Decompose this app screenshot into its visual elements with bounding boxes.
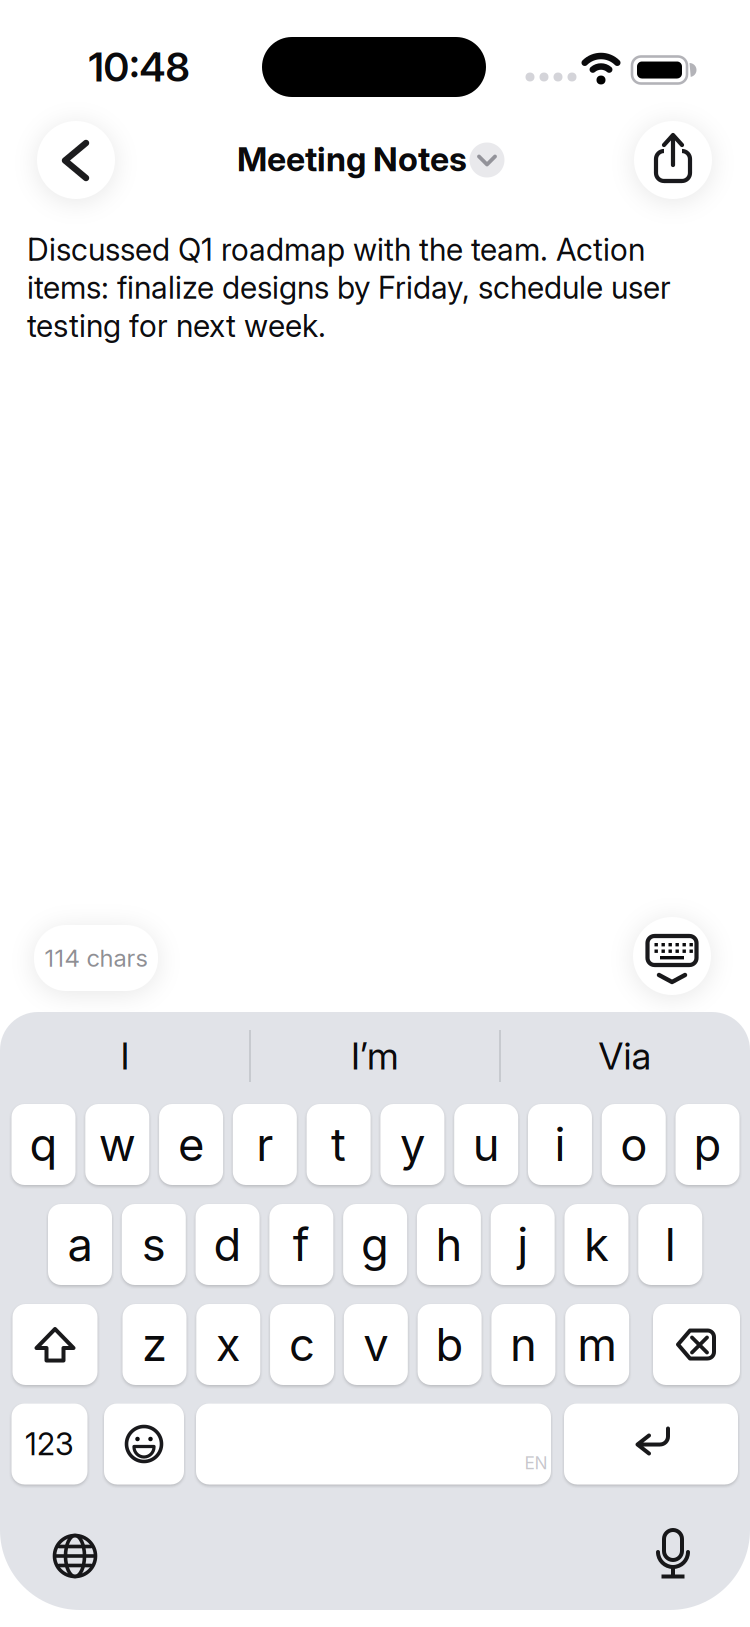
staticText: x xyxy=(216,1317,241,1372)
staticText: p xyxy=(693,1117,721,1172)
button[interactable]: Dictation xyxy=(651,1525,695,1585)
button[interactable]: h xyxy=(417,1202,481,1286)
button[interactable]: l xyxy=(638,1202,702,1286)
button[interactable]: f xyxy=(269,1202,333,1286)
staticText: u xyxy=(473,1117,500,1172)
staticText: w xyxy=(99,1117,136,1172)
staticText: q xyxy=(29,1117,57,1172)
button[interactable]: Share xyxy=(634,121,712,199)
button[interactable]: Return xyxy=(564,1403,738,1484)
staticText: a xyxy=(67,1217,92,1272)
button[interactable]: s xyxy=(122,1202,186,1286)
staticText: 123 xyxy=(25,1425,74,1462)
button[interactable]: t xyxy=(307,1102,371,1186)
button[interactable]: k xyxy=(564,1202,628,1286)
button[interactable]: Via xyxy=(505,1016,745,1096)
button[interactable]: I xyxy=(5,1016,245,1096)
staticText: y xyxy=(400,1117,425,1172)
button[interactable]: v xyxy=(344,1302,408,1386)
button[interactable]: g xyxy=(343,1202,407,1286)
staticText: n xyxy=(510,1317,537,1372)
button[interactable]: p xyxy=(675,1102,739,1186)
button[interactable]: m xyxy=(565,1302,629,1386)
staticText: g xyxy=(361,1217,389,1272)
button[interactable]: y xyxy=(380,1102,444,1186)
staticText: v xyxy=(363,1317,388,1372)
button[interactable]: w xyxy=(85,1102,149,1186)
button[interactable]: r xyxy=(233,1102,297,1186)
staticText: 114 chars xyxy=(44,943,147,972)
staticText: h xyxy=(435,1217,462,1272)
button[interactable]: x xyxy=(196,1302,260,1386)
button[interactable]: Back xyxy=(37,121,115,199)
button[interactable]: d xyxy=(196,1202,260,1286)
button[interactable]: q xyxy=(11,1102,75,1186)
staticText: Via xyxy=(598,1033,651,1079)
button[interactable]: Next keyboard xyxy=(45,1526,105,1586)
button[interactable]: 123 xyxy=(11,1403,87,1484)
staticText: t xyxy=(331,1117,346,1172)
staticText: s xyxy=(142,1217,166,1272)
staticText: I xyxy=(120,1033,129,1079)
button[interactable]: I’m xyxy=(255,1016,495,1096)
staticText: e xyxy=(178,1117,204,1172)
button[interactable]: a xyxy=(48,1202,112,1286)
staticText: k xyxy=(584,1217,609,1272)
staticText: f xyxy=(293,1217,310,1272)
button[interactable]: z xyxy=(122,1302,186,1386)
button[interactable]: e xyxy=(159,1102,223,1186)
staticText: b xyxy=(436,1317,464,1372)
staticText: l xyxy=(665,1217,676,1272)
button[interactable]: c xyxy=(270,1302,334,1386)
button[interactable]: j xyxy=(491,1202,555,1286)
button[interactable]: Title menu xyxy=(469,142,504,177)
staticText: Discussed Q1 roadmap with the team. Acti… xyxy=(27,231,645,268)
button[interactable]: Dismiss keyboard xyxy=(633,917,711,995)
button[interactable]: i xyxy=(528,1102,592,1186)
staticText: Meeting Notes xyxy=(237,139,467,179)
staticText: i xyxy=(554,1117,565,1172)
staticText: 10:48 xyxy=(88,43,189,91)
staticText: items: finalize designs by Friday, sched… xyxy=(27,269,671,306)
button[interactable]: u xyxy=(454,1102,518,1186)
staticText: o xyxy=(620,1117,647,1172)
staticText: EN xyxy=(524,1452,547,1473)
button[interactable]: space xyxy=(196,1403,551,1484)
button[interactable]: b xyxy=(418,1302,482,1386)
staticText: r xyxy=(256,1117,273,1172)
button[interactable]: Emoji xyxy=(104,1403,184,1484)
staticText: j xyxy=(517,1217,528,1272)
button[interactable]: Delete xyxy=(653,1304,740,1385)
staticText: m xyxy=(577,1317,617,1372)
button[interactable]: n xyxy=(491,1302,555,1386)
button[interactable]: Shift xyxy=(12,1304,97,1385)
staticText: z xyxy=(142,1317,167,1372)
staticText: I’m xyxy=(351,1033,399,1079)
staticText: c xyxy=(289,1317,315,1372)
staticText: testing for next week. xyxy=(27,307,326,344)
button[interactable]: o xyxy=(602,1102,666,1186)
staticText: d xyxy=(214,1217,242,1272)
